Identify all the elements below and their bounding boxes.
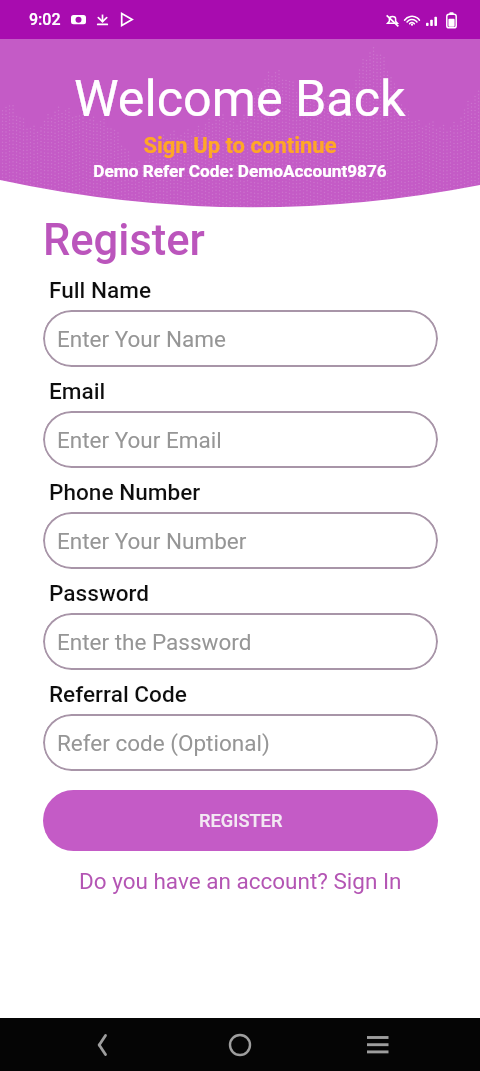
button[interactable]: Home <box>212 1018 268 1071</box>
staticText: Phone Number <box>49 479 201 505</box>
button[interactable]: Recent apps <box>350 1018 406 1071</box>
button[interactable]: REGISTER <box>43 790 438 851</box>
button[interactable]: Refer code (Optional) <box>43 714 438 771</box>
staticText: Referral Code <box>49 681 187 707</box>
staticText: REGISTER <box>199 810 283 831</box>
button[interactable]: Do you have an account? Sign In <box>0 866 480 896</box>
button[interactable]: Enter the Password <box>43 613 438 670</box>
button[interactable]: Enter Your Email <box>43 411 438 468</box>
staticText: Welcome Back <box>74 69 406 128</box>
staticText: Email <box>49 378 106 404</box>
staticText: Sign Up to continue <box>0 133 480 159</box>
staticText: Enter Your Number <box>57 528 247 554</box>
staticText: Enter Your Email <box>57 427 222 453</box>
staticText: Demo Refer Code: DemoAccount9876 <box>0 161 480 181</box>
staticText: Register <box>43 215 205 266</box>
staticText: Password <box>49 580 150 606</box>
staticText: Refer code (Optional) <box>57 730 270 756</box>
staticText: 9:02 <box>29 10 61 29</box>
staticText: Full Name <box>49 277 152 303</box>
button[interactable]: Back <box>74 1018 130 1071</box>
button[interactable]: Enter Your Number <box>43 512 438 569</box>
staticText: Do you have an account? Sign In <box>79 868 402 894</box>
staticText: Enter the Password <box>57 629 252 655</box>
staticText: Enter Your Name <box>57 326 226 352</box>
button[interactable]: Enter Your Name <box>43 310 438 367</box>
